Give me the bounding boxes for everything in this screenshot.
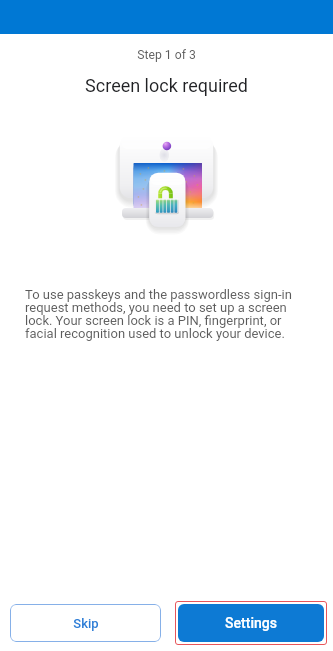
button[interactable]: Skip (10, 604, 161, 642)
staticText: Screen lock required (85, 75, 248, 96)
staticText: Step 1 of 3 (137, 48, 196, 62)
staticText: Settings (225, 615, 277, 631)
staticText: Skip (73, 616, 99, 631)
staticText: To use passkeys and the passwordless sig… (25, 287, 308, 341)
button[interactable]: Settings (178, 604, 324, 642)
